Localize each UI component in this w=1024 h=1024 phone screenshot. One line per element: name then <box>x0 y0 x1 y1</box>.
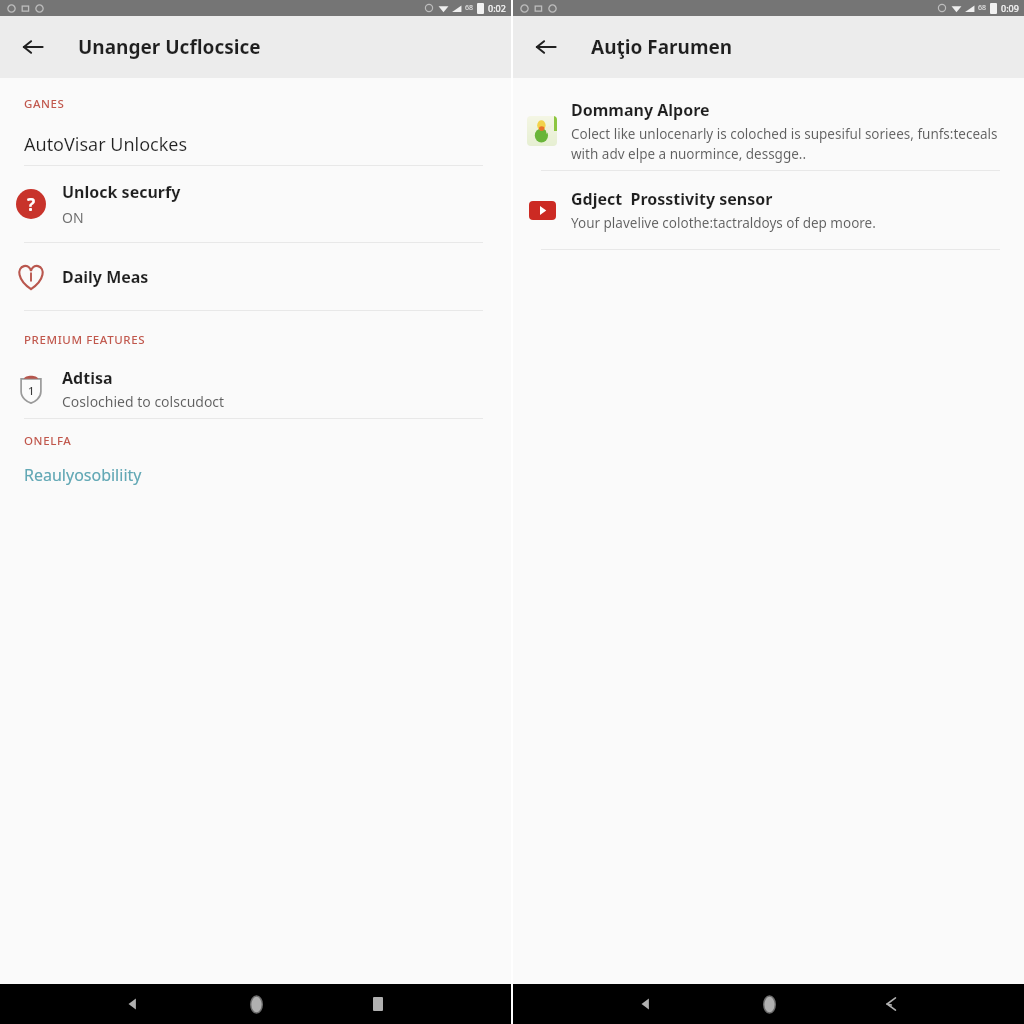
button[interactable]: Recents <box>358 984 398 1024</box>
button[interactable]: Recents <box>871 984 911 1024</box>
button[interactable]: Back <box>524 25 568 69</box>
staticText: 0:02 <box>488 2 506 14</box>
button[interactable]: Home <box>749 984 789 1024</box>
button[interactable]: Dommany Alpore <box>513 92 1024 170</box>
button[interactable]: AutoVisar Unlockes <box>0 123 511 165</box>
staticText: ON <box>62 208 84 227</box>
staticText: Adtisa <box>62 367 113 389</box>
button[interactable]: Back <box>626 984 666 1024</box>
staticText: Daily Meas <box>62 266 149 288</box>
staticText: PREMIUM FEATURES <box>24 332 146 348</box>
button[interactable]: 1 <box>0 360 511 418</box>
button[interactable]: Reaulyosobiliity <box>0 464 511 486</box>
staticText: Gdject Prosstivity sensor <box>571 188 773 210</box>
staticText: ONELFA <box>24 433 72 449</box>
staticText: 1 <box>28 383 35 398</box>
staticText: Colect like unlocenarly is coloched is s… <box>571 125 1004 163</box>
button[interactable]: Gdject Prosstivity sensor <box>513 171 1024 249</box>
staticText: 68 <box>978 3 987 13</box>
button[interactable]: ? <box>0 166 511 242</box>
staticText: Dommany Alpore <box>571 99 710 121</box>
staticText: Reaulyosobiliity <box>24 464 142 486</box>
staticText: Your plavelive colothe:tactraldoys of de… <box>571 214 876 232</box>
staticText: ? <box>27 193 36 216</box>
button[interactable]: Back <box>113 984 153 1024</box>
button[interactable]: Home <box>236 984 276 1024</box>
staticText: Unlock securfy <box>62 181 181 203</box>
button[interactable]: Back <box>11 25 55 69</box>
staticText: AutoVisar Unlockes <box>24 132 188 157</box>
staticText: Unanger Ucflocsice <box>78 34 261 60</box>
staticText: Auţio Farumen <box>591 34 733 60</box>
staticText: GANES <box>24 96 65 112</box>
staticText: Coslochied to colscudoct <box>62 392 225 411</box>
button[interactable]: Daily Meas <box>0 243 511 310</box>
staticText: 68 <box>465 3 474 13</box>
staticText: 0:09 <box>1001 2 1019 14</box>
